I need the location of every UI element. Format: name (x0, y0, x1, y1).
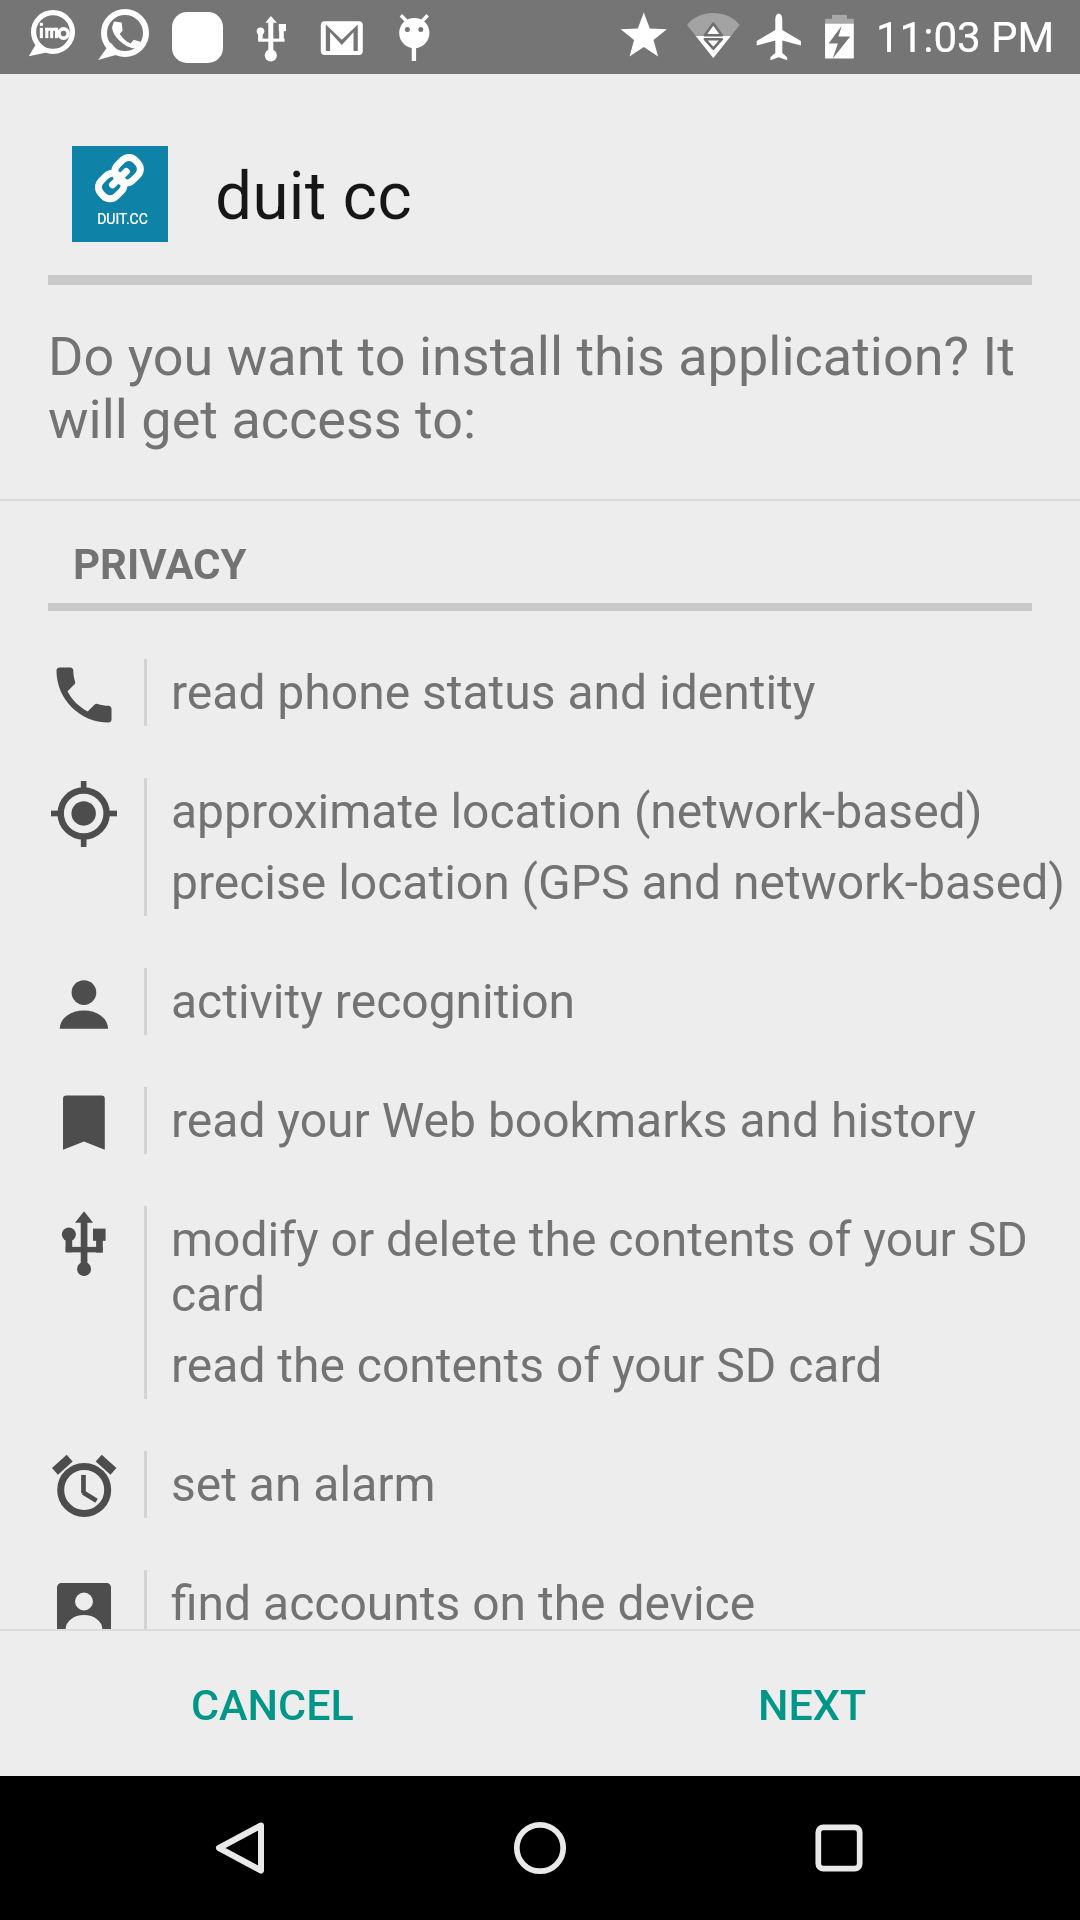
button[interactable]: Back (195, 1803, 285, 1893)
staticText: CANCEL (191, 1681, 354, 1731)
staticText: card (171, 1267, 266, 1323)
staticText: read the contents of your SD card (171, 1338, 883, 1394)
staticText: DUIT.CC (97, 211, 148, 227)
staticText: NEXT (758, 1681, 867, 1731)
button[interactable]: Recent apps (794, 1803, 884, 1893)
staticText: 11:03 PM (876, 13, 1055, 62)
staticText: read your Web bookmarks and history (171, 1093, 976, 1149)
staticText: duit cc (215, 158, 412, 235)
button[interactable]: Home (495, 1803, 585, 1893)
button[interactable]: CANCEL (143, 1651, 402, 1761)
staticText: precise location (GPS and network-based) (171, 855, 1066, 911)
staticText: approximate location (network-based) (171, 784, 983, 840)
staticText: activity recognition (171, 974, 576, 1030)
staticText: modify or delete the contents of your SD (171, 1212, 1028, 1268)
staticText: read phone status and identity (171, 665, 816, 721)
staticText: find accounts on the device (171, 1576, 756, 1629)
staticText: set an alarm (171, 1457, 436, 1513)
staticText: Do you want to install this application?… (48, 325, 1015, 451)
staticText: PRIVACY (73, 540, 247, 589)
button[interactable]: NEXT (710, 1651, 915, 1761)
